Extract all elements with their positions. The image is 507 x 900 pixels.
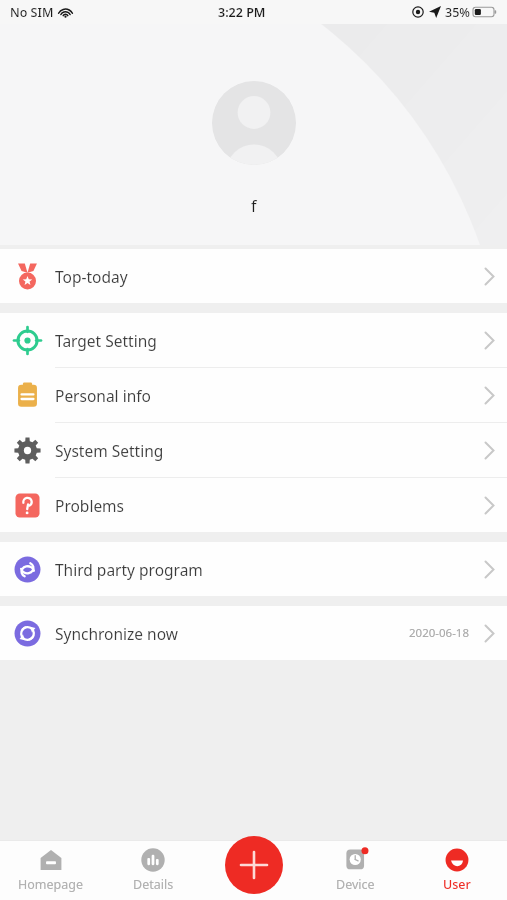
button[interactable]: Homepage bbox=[0, 840, 102, 900]
staticText: No SIM bbox=[10, 4, 54, 21]
button[interactable]: Top-today bbox=[0, 249, 507, 303]
button[interactable]: Device bbox=[305, 840, 406, 900]
staticText: Target Setting bbox=[55, 330, 157, 351]
staticText: Top-today bbox=[55, 266, 128, 287]
button[interactable]: Personal info bbox=[0, 368, 507, 422]
staticText: 2020-06-18 bbox=[409, 625, 470, 641]
button[interactable]: Third party program bbox=[0, 542, 507, 596]
button[interactable]: f bbox=[235, 193, 273, 219]
button[interactable]: System Setting bbox=[0, 423, 507, 477]
button[interactable]: User bbox=[406, 840, 507, 900]
staticText: Personal info bbox=[55, 385, 151, 406]
staticText: Synchronize now bbox=[55, 623, 178, 644]
staticText: System Setting bbox=[55, 440, 164, 461]
staticText: 3:22 PM bbox=[218, 4, 266, 21]
staticText: 35% bbox=[445, 4, 470, 21]
staticText: Device bbox=[336, 876, 375, 893]
button[interactable]: Details bbox=[102, 840, 204, 900]
staticText: Problems bbox=[55, 495, 125, 516]
staticText: Homepage bbox=[18, 876, 84, 893]
button[interactable]: Target Setting bbox=[0, 313, 507, 367]
staticText: Third party program bbox=[55, 559, 203, 580]
button[interactable]: Problems bbox=[0, 478, 507, 532]
staticText: Details bbox=[133, 876, 174, 893]
staticText: f bbox=[251, 195, 257, 217]
button[interactable]: Add bbox=[225, 836, 283, 894]
button[interactable]: Profile photo bbox=[212, 81, 296, 165]
staticText: User bbox=[443, 876, 471, 893]
button[interactable]: Synchronize now bbox=[0, 606, 507, 660]
